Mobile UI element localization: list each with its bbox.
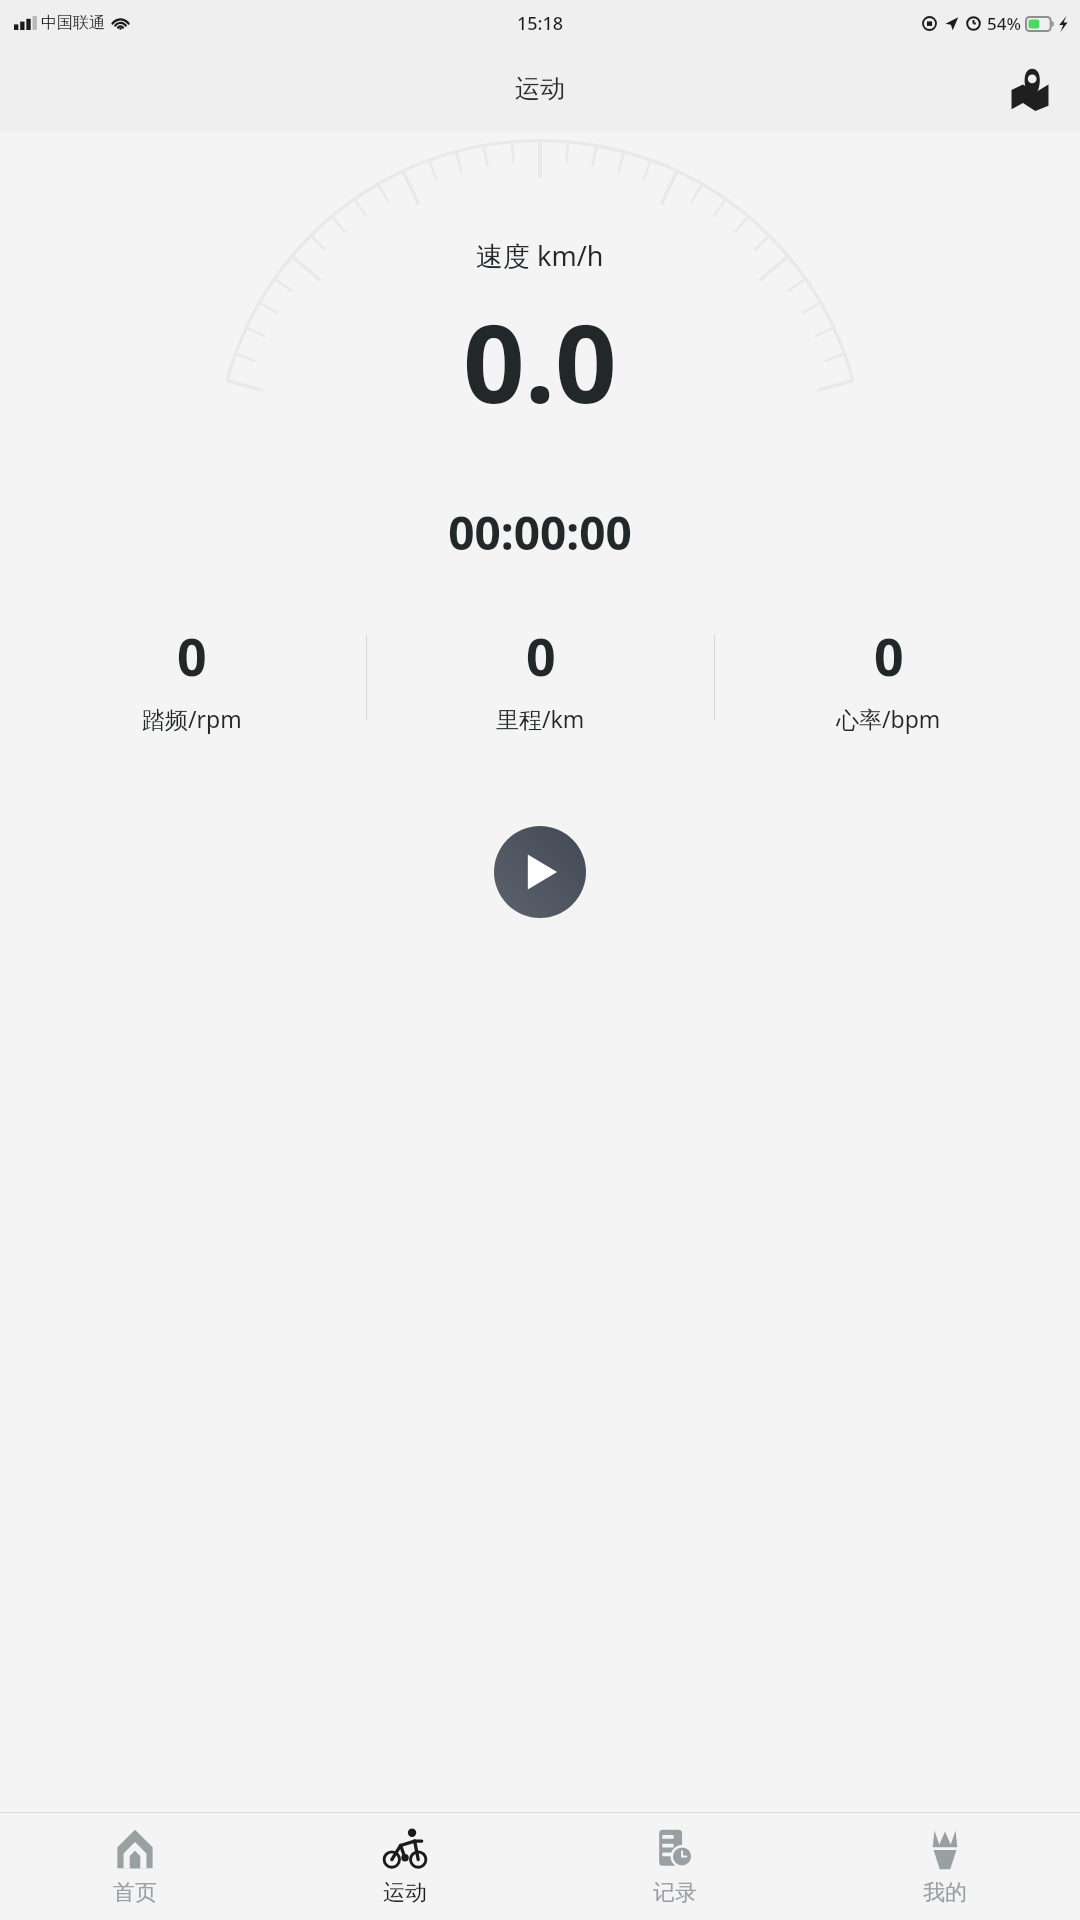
staticText: 里程/km [496, 703, 585, 734]
staticText: 首页 [113, 1879, 157, 1907]
staticText: 0.0 [463, 288, 617, 435]
button[interactable]: 0 [18, 620, 366, 734]
staticText: 速度 km/h [476, 237, 604, 274]
staticText: 心率/bpm [836, 703, 941, 734]
button[interactable]: 我的 [810, 1813, 1080, 1920]
staticText: 00:00:00 [0, 501, 1080, 564]
staticText: 我的 [923, 1879, 967, 1907]
button[interactable]: 运动 [270, 1813, 540, 1920]
staticText: 0 [177, 620, 207, 691]
staticText: 运动 [383, 1879, 427, 1907]
staticText: 运动 [515, 73, 565, 104]
staticText: 0 [874, 620, 904, 691]
button[interactable]: 首页 [0, 1813, 270, 1920]
button[interactable]: 0 [367, 620, 714, 734]
staticText: 15:18 [517, 11, 564, 36]
button[interactable]: Start [494, 826, 586, 918]
button[interactable]: 0 [715, 620, 1062, 734]
staticText: 记录 [653, 1879, 697, 1907]
button[interactable]: Map [1002, 61, 1058, 117]
staticText: 54% [987, 12, 1021, 35]
staticText: 0 [526, 620, 556, 691]
staticText: 踏频/rpm [142, 703, 242, 734]
staticText: 中国联通 [41, 13, 105, 33]
button[interactable]: 记录 [540, 1813, 810, 1920]
